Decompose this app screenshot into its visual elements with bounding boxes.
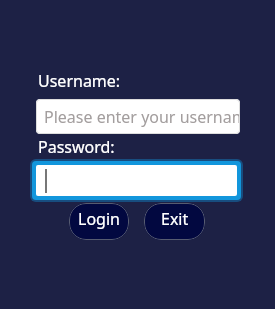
button[interactable] [32, 161, 241, 200]
staticText: Please enter your username [44, 106, 240, 128]
button[interactable]: Login [69, 203, 129, 240]
button[interactable]: Please enter your username [36, 99, 240, 134]
staticText: Exit [161, 208, 189, 230]
staticText: Login [78, 208, 120, 230]
staticText: Password: [38, 136, 115, 158]
staticText: Username: [38, 70, 121, 92]
button[interactable]: Exit [144, 203, 205, 240]
